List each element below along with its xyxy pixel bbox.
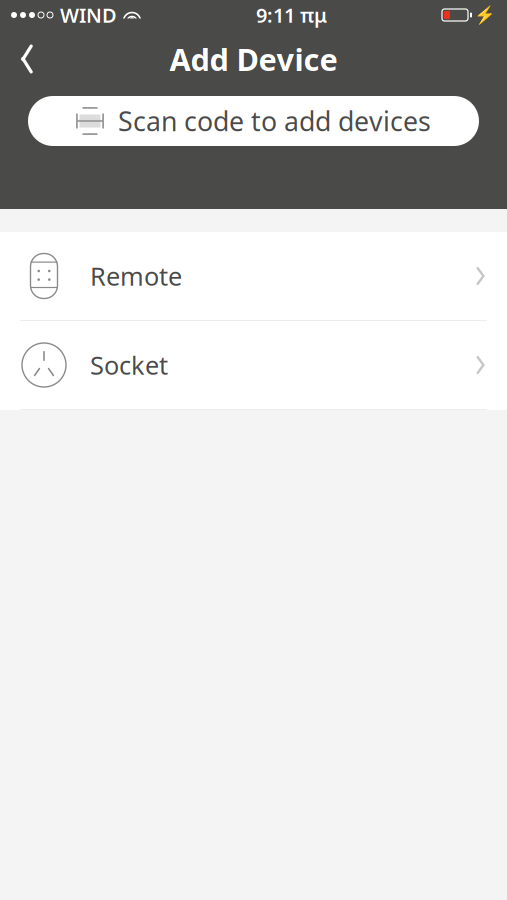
staticText: ⚡: [474, 5, 496, 25]
staticText: Socket: [90, 348, 168, 382]
button[interactable]: Scan code to add devices: [28, 96, 479, 146]
button[interactable]: Socket: [0, 321, 507, 410]
staticText: Remote: [90, 259, 182, 293]
button[interactable]: Back: [0, 37, 54, 81]
staticText: Scan code to add devices: [118, 103, 431, 139]
button[interactable]: Remote: [0, 232, 507, 321]
staticText: 9:11 πμ: [256, 2, 327, 28]
staticText: Add Device: [169, 39, 337, 79]
staticText: WIND: [60, 2, 117, 28]
